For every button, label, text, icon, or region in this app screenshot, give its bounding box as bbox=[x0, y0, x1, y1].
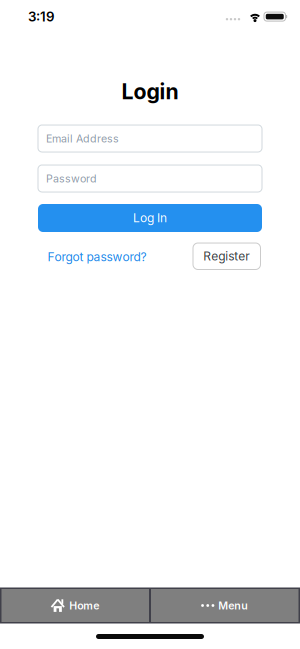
staticText: Log In bbox=[133, 211, 167, 225]
button[interactable]: Password bbox=[38, 165, 262, 192]
button[interactable]: Forgot password? bbox=[47, 250, 146, 264]
button[interactable]: Home bbox=[1, 589, 149, 622]
staticText: Email Address bbox=[46, 132, 119, 145]
button[interactable]: Email Address bbox=[38, 125, 262, 152]
staticText: Home bbox=[69, 599, 99, 612]
staticText: Login bbox=[121, 79, 178, 104]
staticText: 3:19 bbox=[28, 9, 55, 24]
staticText: Menu bbox=[218, 599, 248, 612]
staticText: Register bbox=[203, 249, 250, 263]
button[interactable]: Register bbox=[193, 243, 260, 269]
button[interactable]: Menu bbox=[151, 589, 298, 622]
button[interactable]: Log In bbox=[38, 204, 262, 232]
staticText: Password bbox=[46, 172, 97, 185]
staticText: Forgot password? bbox=[47, 250, 146, 264]
